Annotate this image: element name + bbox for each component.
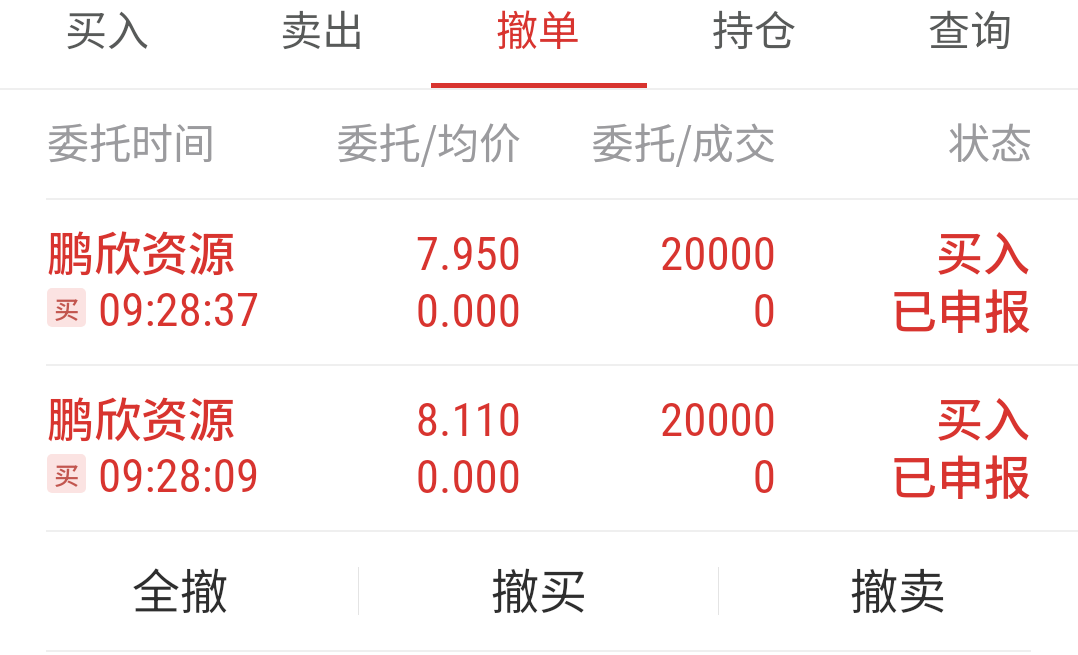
staticText: 买入 [65, 0, 150, 58]
staticText: 买 [54, 456, 80, 492]
staticText: 委托/成交 [356, 110, 776, 171]
button[interactable]: 撤买 [360, 530, 719, 655]
staticText: 撤卖 [850, 553, 947, 623]
staticText: 已申报 [611, 274, 1031, 342]
staticText: 0 [356, 449, 776, 504]
button[interactable]: 鹏欣资源 [0, 364, 1078, 530]
staticText: 7.950 [101, 226, 521, 281]
staticText: 委托时间 [47, 110, 216, 171]
button[interactable]: 买入 [0, 0, 215, 89]
staticText: 卖出 [280, 0, 365, 58]
staticText: 鹏欣资源 [47, 216, 235, 284]
staticText: 买入 [610, 216, 1030, 284]
button[interactable]: 持仓 [646, 0, 862, 89]
button[interactable]: 鹏欣资源 [0, 198, 1078, 364]
staticText: 0.000 [101, 449, 521, 504]
staticText: 撤单 [496, 0, 581, 58]
button[interactable]: 撤卖 [719, 530, 1078, 655]
staticText: 全撤 [132, 553, 229, 623]
staticText: 持仓 [712, 0, 797, 58]
staticText: 状态 [612, 110, 1032, 171]
staticText: 20000 [356, 392, 776, 447]
staticText: 撤买 [491, 553, 588, 623]
staticText: 查询 [928, 0, 1013, 58]
staticText: 0.000 [101, 283, 521, 338]
staticText: 买入 [610, 382, 1030, 450]
staticText: 20000 [356, 226, 776, 281]
button[interactable]: 卖出 [215, 0, 430, 89]
staticText: 已申报 [611, 440, 1031, 508]
staticText: 0 [356, 283, 776, 338]
button[interactable]: 全撤 [0, 530, 360, 655]
button[interactable]: 查询 [862, 0, 1078, 89]
staticText: 委托/均价 [101, 110, 521, 171]
staticText: 8.110 [101, 392, 521, 447]
button[interactable]: 撤单 [430, 0, 646, 89]
staticText: 09:28:37 [98, 282, 260, 337]
staticText: 09:28:09 [98, 448, 260, 503]
staticText: 鹏欣资源 [47, 382, 235, 450]
staticText: 买 [54, 290, 80, 326]
